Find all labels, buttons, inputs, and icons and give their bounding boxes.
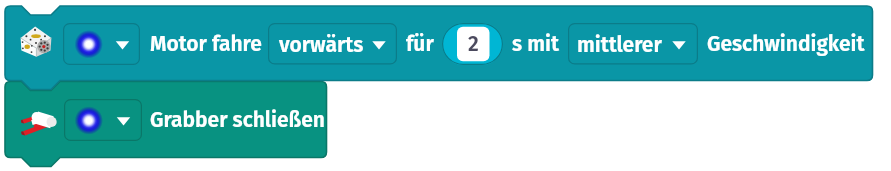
button[interactable]: Port xyxy=(63,23,140,65)
staticText: vorwärts xyxy=(279,32,364,57)
button[interactable]: Tempo xyxy=(568,23,698,65)
button[interactable]: Dauer xyxy=(442,23,503,65)
staticText: mittlerer xyxy=(577,32,662,57)
staticText: Grabber schließen xyxy=(150,107,325,132)
button[interactable] xyxy=(0,78,340,171)
button[interactable] xyxy=(0,0,891,92)
staticText: s mit xyxy=(512,31,559,56)
other: Greifer xyxy=(21,106,55,136)
staticText: Motor fahre xyxy=(150,31,262,56)
staticText: Geschwindigkeit xyxy=(707,31,865,56)
button[interactable]: Port xyxy=(64,99,142,141)
button[interactable]: Richtung xyxy=(268,23,397,65)
other: Calliope mini xyxy=(20,26,52,57)
staticText: für xyxy=(406,31,434,56)
staticText: 2 xyxy=(468,31,479,56)
